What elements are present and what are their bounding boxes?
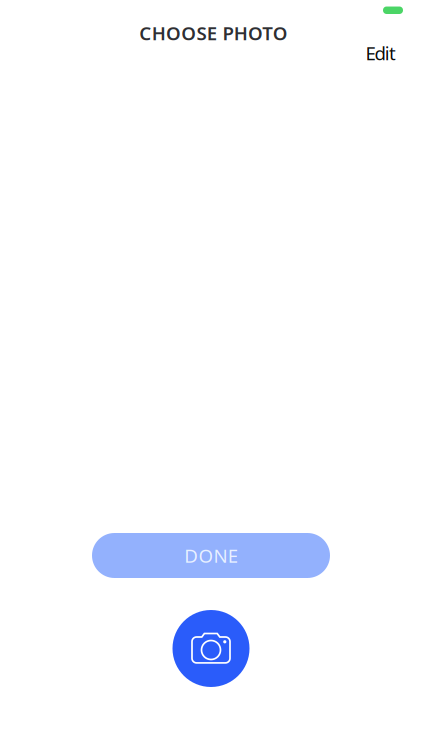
button[interactable]: DONE [92,533,330,578]
staticText: Edit [365,41,396,65]
staticText: CHOOSE PHOTO [139,21,288,45]
button[interactable]: Take photo [172,610,249,687]
button[interactable]: Edit [334,41,396,65]
staticText: DONE [184,543,238,568]
